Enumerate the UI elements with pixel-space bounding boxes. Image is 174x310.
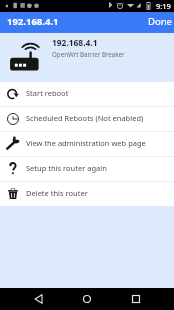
button[interactable]: Done — [144, 14, 174, 31]
staticText: 9:19 — [156, 1, 171, 11]
button[interactable]: Administration — [0, 132, 174, 156]
staticText: OpenWrt Barrier Breaker — [52, 50, 125, 58]
button[interactable]: Start reboot — [0, 82, 174, 106]
other: Setup — [0, 157, 26, 181]
staticText: View the administration web page — [26, 138, 146, 148]
button[interactable]: Recent apps — [129, 292, 143, 306]
other: Start reboot — [0, 82, 26, 106]
button[interactable]: Home — [80, 292, 94, 306]
staticText: Done — [148, 15, 172, 28]
other: Administration — [0, 132, 26, 156]
staticText: Start reboot — [26, 88, 69, 98]
staticText: Setup this router again — [26, 163, 107, 173]
other: Delete — [0, 182, 26, 206]
button[interactable]: Delete — [0, 182, 174, 206]
staticText: Scheduled Reboots (Not enabled) — [26, 113, 144, 123]
other: Scheduled reboots — [0, 107, 26, 131]
button[interactable]: Back — [32, 292, 46, 306]
staticText: Delete this router — [26, 188, 88, 198]
button[interactable]: Scheduled reboots — [0, 107, 174, 131]
staticText: 192.168.4.1 — [7, 15, 59, 28]
button[interactable]: Setup — [0, 157, 174, 181]
staticText: 192.168.4.1 — [52, 37, 98, 48]
